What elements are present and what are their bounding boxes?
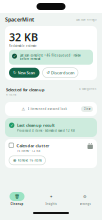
staticText: Last scan complete • 46 files queued · r… — [19, 54, 80, 61]
staticText: Clear — [83, 107, 90, 111]
staticText: 4 categories — [79, 87, 96, 90]
button[interactable]: ⚠ — [0, 102, 102, 116]
button[interactable]: 🗑 — [0, 192, 34, 206]
staticText: Discard scan — [51, 70, 74, 75]
staticText: ✓ — [10, 123, 13, 127]
staticText: Insights — [45, 202, 56, 206]
button[interactable]: ↺ — [42, 68, 78, 78]
button[interactable]: ⊗ — [9, 156, 45, 165]
staticText: ↺ — [46, 70, 49, 75]
staticText: 4 items need a second look — [27, 107, 66, 111]
staticText: New Scan — [17, 70, 35, 75]
staticText: 32 KB — [9, 30, 38, 44]
staticText: ⊗ — [13, 158, 16, 163]
staticText: SpacerMint — [5, 16, 34, 23]
staticText: ⚙ — [83, 194, 87, 199]
staticText: ↻ — [13, 70, 16, 75]
staticText: Selected for cleanup — [6, 87, 45, 92]
staticText: 🗑 — [14, 194, 19, 199]
staticText: ✦ — [49, 194, 52, 199]
staticText: ✓ — [13, 54, 16, 58]
staticText: Remove 16 items — [17, 159, 41, 162]
button[interactable]: ⚙ — [68, 192, 102, 206]
staticText: Reclaimable estimate — [9, 44, 37, 48]
button[interactable]: ✦ — [34, 192, 68, 206]
staticText: Last cleanup result — [17, 123, 55, 128]
staticText: Settings — [79, 202, 90, 206]
staticText: Processed 4 items · Estimated saved 12 K… — [17, 129, 75, 132]
staticText: Calendar clutter — [17, 143, 50, 148]
staticText: 16 items · 12 KB — [17, 149, 41, 153]
staticText: Cleanup — [10, 202, 23, 206]
staticText: ⚠ — [21, 107, 25, 111]
button[interactable]: ↻ — [9, 68, 39, 78]
staticText: 4 items — [6, 93, 16, 96]
staticText: Last scan 4m ago — [76, 18, 97, 21]
